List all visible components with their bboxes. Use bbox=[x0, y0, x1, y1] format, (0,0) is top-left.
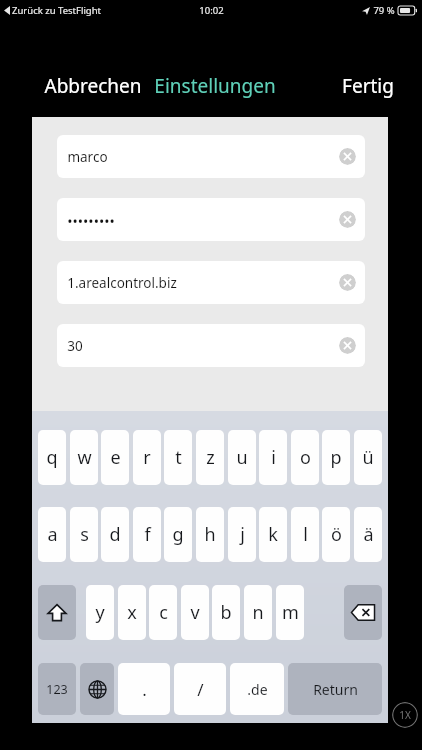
button[interactable]: Clear text bbox=[339, 211, 356, 228]
button[interactable]: 123 bbox=[38, 663, 76, 715]
button[interactable]: n bbox=[244, 585, 272, 640]
staticText: 123 bbox=[46, 681, 68, 698]
button[interactable]: w bbox=[70, 430, 98, 485]
staticText: r bbox=[143, 445, 151, 470]
other: Shift bbox=[47, 603, 67, 623]
staticText: a bbox=[47, 522, 58, 547]
staticText: 30 bbox=[67, 337, 83, 355]
button[interactable]: c bbox=[149, 585, 177, 640]
button[interactable]: Clear text bbox=[339, 274, 356, 291]
staticText: q bbox=[46, 445, 58, 470]
button[interactable]: l bbox=[291, 507, 319, 562]
staticText: Zurück zu TestFlight bbox=[12, 4, 101, 17]
button[interactable]: x bbox=[118, 585, 146, 640]
button[interactable]: o bbox=[291, 430, 319, 485]
staticText: i bbox=[271, 445, 276, 470]
button[interactable]: marco bbox=[57, 135, 365, 178]
button[interactable]: Abbrechen bbox=[40, 69, 146, 103]
button[interactable]: s bbox=[70, 507, 98, 562]
button[interactable]: j bbox=[228, 507, 256, 562]
staticText: x bbox=[127, 600, 137, 625]
staticText: y bbox=[95, 600, 105, 625]
staticText: v bbox=[190, 600, 200, 625]
staticText: s bbox=[80, 522, 89, 547]
staticText: Einstellungen bbox=[154, 73, 276, 99]
button[interactable]: z bbox=[196, 430, 224, 485]
button[interactable]: v bbox=[181, 585, 209, 640]
staticText: n bbox=[252, 600, 264, 625]
staticText: u bbox=[236, 445, 248, 470]
staticText: z bbox=[206, 445, 215, 470]
staticText: e bbox=[110, 445, 121, 470]
other: Change keyboard language bbox=[88, 680, 107, 699]
staticText: marco bbox=[67, 148, 108, 166]
button[interactable]: Fertig bbox=[338, 69, 398, 103]
staticText: ••••••••• bbox=[67, 212, 115, 231]
staticText: / bbox=[197, 678, 204, 701]
button[interactable]: 30 bbox=[57, 324, 365, 367]
button[interactable]: k bbox=[259, 507, 287, 562]
staticText: Abbrechen bbox=[44, 73, 142, 99]
staticText: Return bbox=[313, 680, 358, 699]
button[interactable]: Change keyboard language bbox=[80, 663, 114, 715]
staticText: h bbox=[204, 522, 216, 547]
button[interactable]: 1.arealcontrol.biz bbox=[57, 261, 365, 304]
button[interactable]: ö bbox=[322, 507, 350, 562]
button[interactable]: p bbox=[322, 430, 350, 485]
button[interactable]: a bbox=[38, 507, 66, 562]
staticText: p bbox=[330, 445, 342, 470]
button[interactable]: Clear text bbox=[339, 337, 356, 354]
staticText: k bbox=[268, 522, 278, 547]
staticText: Fertig bbox=[342, 73, 394, 99]
staticText: t bbox=[175, 445, 182, 470]
button[interactable]: .de bbox=[230, 663, 284, 715]
staticText: j bbox=[240, 522, 245, 547]
staticText: ü bbox=[362, 445, 374, 470]
staticText: m bbox=[282, 600, 299, 625]
staticText: ä bbox=[363, 522, 374, 547]
staticText: 1X bbox=[399, 708, 411, 722]
staticText: l bbox=[303, 522, 308, 547]
button[interactable]: . bbox=[118, 663, 170, 715]
other: Backspace bbox=[351, 604, 375, 621]
button[interactable]: ä bbox=[354, 507, 382, 562]
staticText: 10:02 bbox=[199, 4, 224, 17]
button[interactable]: f bbox=[133, 507, 161, 562]
staticText: .de bbox=[247, 680, 268, 699]
button[interactable]: u bbox=[228, 430, 256, 485]
staticText: 79 % bbox=[373, 4, 395, 17]
staticText: ö bbox=[331, 522, 342, 547]
button[interactable]: Clear text bbox=[339, 148, 356, 165]
staticText: g bbox=[172, 522, 184, 547]
staticText: b bbox=[220, 600, 232, 625]
button[interactable]: i bbox=[259, 430, 287, 485]
staticText: 1.arealcontrol.biz bbox=[67, 274, 177, 292]
button[interactable]: b bbox=[212, 585, 240, 640]
button[interactable]: Scale 1X bbox=[392, 702, 418, 728]
button[interactable]: e bbox=[101, 430, 129, 485]
button[interactable]: d bbox=[101, 507, 129, 562]
staticText: c bbox=[159, 600, 168, 625]
staticText: d bbox=[109, 522, 121, 547]
button[interactable]: m bbox=[276, 585, 304, 640]
button[interactable]: ü bbox=[354, 430, 382, 485]
button[interactable]: Return bbox=[288, 663, 382, 715]
staticText: o bbox=[300, 445, 311, 470]
button[interactable]: r bbox=[133, 430, 161, 485]
button[interactable]: t bbox=[164, 430, 192, 485]
button[interactable]: Shift bbox=[38, 585, 76, 640]
button[interactable]: / bbox=[174, 663, 226, 715]
staticText: . bbox=[142, 678, 147, 701]
staticText: w bbox=[77, 445, 92, 470]
button[interactable]: y bbox=[86, 585, 114, 640]
button[interactable]: ••••••••• bbox=[57, 198, 365, 241]
button[interactable]: Backspace bbox=[344, 585, 382, 640]
staticText: f bbox=[144, 522, 151, 547]
button[interactable]: g bbox=[164, 507, 192, 562]
button[interactable]: h bbox=[196, 507, 224, 562]
button[interactable]: q bbox=[38, 430, 66, 485]
